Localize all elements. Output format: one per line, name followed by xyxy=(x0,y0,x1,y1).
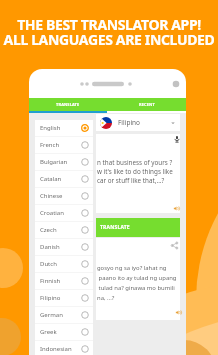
button[interactable]: Croatian xyxy=(35,205,93,221)
staticText: TRANSLATE xyxy=(100,224,130,231)
staticText: Chinese xyxy=(40,192,79,200)
button[interactable]: English xyxy=(35,120,93,136)
button[interactable]: German xyxy=(35,307,93,323)
staticText: Finnish xyxy=(40,277,79,285)
other: Speak source xyxy=(173,205,180,212)
staticText: gosyo ng sa iyo? lahat ng paano ito ay t… xyxy=(97,264,181,301)
button[interactable]: Indonesian xyxy=(35,341,93,355)
staticText: Bulgarian xyxy=(40,158,79,166)
other: Speak translation xyxy=(175,309,182,316)
staticText: Indonesian xyxy=(40,345,79,353)
button[interactable]: Chinese xyxy=(35,188,93,204)
staticText: Croatian xyxy=(40,209,79,217)
button[interactable]: Finnish xyxy=(35,273,93,289)
button[interactable]: Danish xyxy=(35,239,93,255)
button[interactable]: RECENT xyxy=(107,98,186,111)
button[interactable]: Bulgarian xyxy=(35,154,93,170)
button[interactable]: Czech xyxy=(35,222,93,238)
staticText: Filipino xyxy=(118,118,169,127)
other: Voice input xyxy=(173,135,181,143)
staticText: n that business of yours ? w it's like t… xyxy=(97,158,181,185)
button[interactable]: Filipino xyxy=(35,290,93,306)
staticText: RECENT xyxy=(139,102,155,107)
staticText: TRANSLATE xyxy=(56,102,80,107)
staticText: Greek xyxy=(40,328,79,336)
button[interactable]: TRANSLATE xyxy=(96,218,180,237)
staticText: Filipino xyxy=(40,294,79,302)
staticText: English xyxy=(40,124,79,132)
button[interactable]: Filipino xyxy=(96,114,180,131)
staticText: French xyxy=(40,141,79,149)
button[interactable]: Greek xyxy=(35,324,93,340)
staticText: Catalan xyxy=(40,175,79,183)
staticText: Czech xyxy=(40,226,79,234)
button[interactable]: French xyxy=(35,137,93,153)
button[interactable]: Catalan xyxy=(35,171,93,187)
other: Share xyxy=(170,241,179,250)
button[interactable]: Dutch xyxy=(35,256,93,272)
staticText: Dutch xyxy=(40,260,79,268)
staticText: Danish xyxy=(40,243,79,251)
staticText: German xyxy=(40,311,79,319)
button[interactable]: TRANSLATE xyxy=(29,98,107,111)
staticText: THE BEST TRANSLATOR APP! ALL LANGUAGES A… xyxy=(0,15,218,49)
